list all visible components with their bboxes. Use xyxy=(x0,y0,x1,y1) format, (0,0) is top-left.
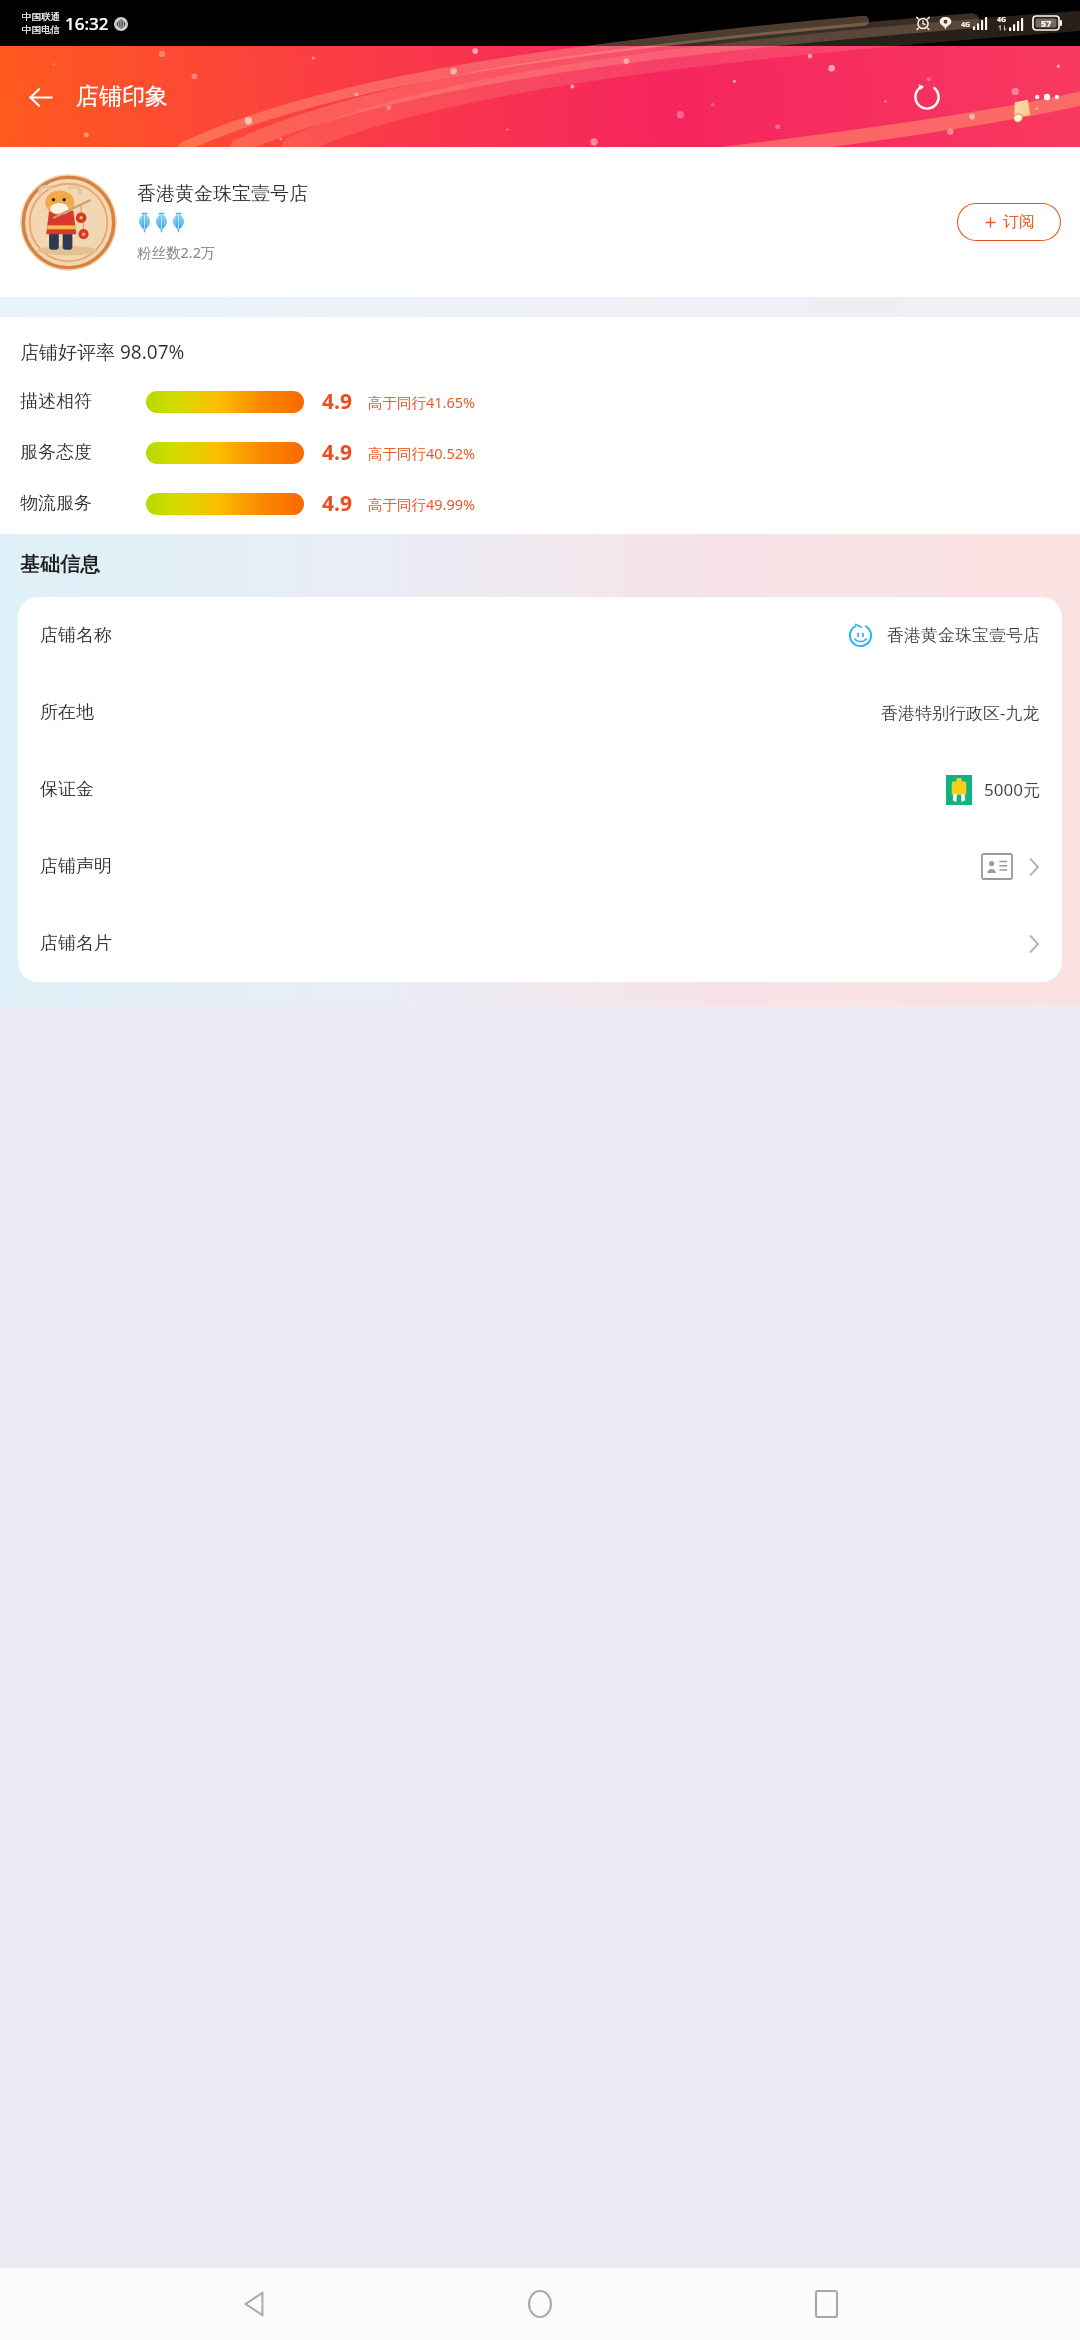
staticText: 中国电信 xyxy=(22,24,60,36)
button[interactable]: 保证金 xyxy=(40,751,1040,828)
staticText: 高于同行41.65% xyxy=(368,392,476,412)
staticText: 4G xyxy=(997,15,1007,25)
button[interactable]: 店铺名称 xyxy=(40,597,1040,674)
button[interactable]: More options xyxy=(1022,72,1072,122)
staticText: 高于同行40.52% xyxy=(368,443,476,463)
staticText: 57 xyxy=(1041,17,1052,29)
staticText: 香港黄金珠宝壹号店 xyxy=(887,625,1040,646)
staticText: 4.9 xyxy=(322,438,352,467)
button[interactable]: Recent apps xyxy=(794,2272,858,2336)
button[interactable]: 店铺名片 xyxy=(40,905,1040,982)
staticText: 物流服务 xyxy=(20,492,138,515)
staticText: 香港特别行政区-九龙 xyxy=(881,701,1040,724)
staticText: 4G xyxy=(961,20,971,30)
button[interactable]: 订阅 xyxy=(956,202,1062,242)
staticText: 中国联通 xyxy=(22,11,60,23)
staticText: 店铺名片 xyxy=(40,932,112,955)
staticText: 香港黄金珠宝壹号店 xyxy=(137,182,308,206)
staticText: 高于同行49.99% xyxy=(368,494,476,514)
staticText: 保证金 xyxy=(40,778,94,801)
staticText: 服务态度 xyxy=(20,441,138,464)
staticText: 店铺印象 xyxy=(76,82,168,111)
button[interactable]: Back xyxy=(14,71,66,123)
staticText: 描述相符 xyxy=(20,390,138,413)
button[interactable]: Back xyxy=(222,2272,286,2336)
button[interactable]: Shop avatar xyxy=(0,147,1080,297)
staticText: 所在地 xyxy=(40,701,94,724)
button[interactable]: Home xyxy=(508,2272,572,2336)
staticText: 订阅 xyxy=(1003,212,1035,232)
staticText: 16:32 xyxy=(65,12,109,35)
staticText: 4.9 xyxy=(322,489,352,518)
staticText: 店铺名称 xyxy=(40,624,112,647)
button[interactable]: 所在地 xyxy=(40,674,1040,751)
staticText: 4.9 xyxy=(322,387,352,416)
button[interactable]: Shop avatar xyxy=(20,174,117,271)
staticText: 基础信息 xyxy=(20,552,100,577)
staticText: 5000元 xyxy=(984,778,1040,801)
button[interactable]: Refresh xyxy=(902,72,952,122)
staticText: 粉丝数2.2万 xyxy=(137,242,216,262)
staticText: 店铺好评率 98.07% xyxy=(20,339,185,365)
button[interactable]: 店铺声明 xyxy=(40,828,1040,905)
staticText: 店铺声明 xyxy=(40,855,112,878)
